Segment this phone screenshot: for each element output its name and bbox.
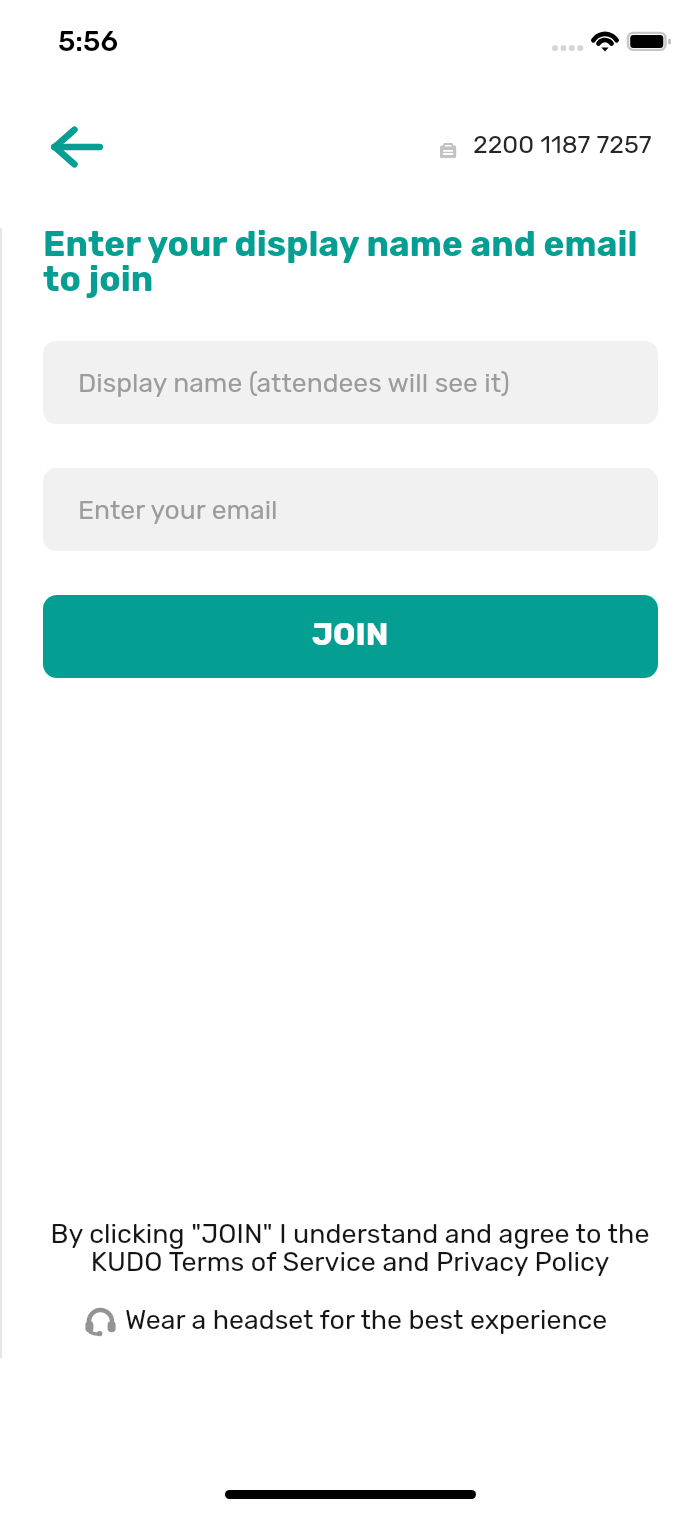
staticText: JOIN [312,616,389,653]
staticText: Enter your email [78,494,278,525]
button[interactable]: Copy meeting ID 2200 1187 7257 [436,126,656,164]
staticText: Display name (attendees will see it) [78,367,510,398]
staticText: By clicking "JOIN" I understand and agre… [26,1218,674,1277]
staticText: Enter your display name and email to joi… [43,223,658,300]
button[interactable]: Display name (attendees will see it) [43,341,658,424]
button[interactable]: Enter your email [43,468,658,551]
staticText: 5:56 [58,25,118,58]
button[interactable]: Back [24,110,130,184]
staticText: 2200 1187 7257 [473,130,652,160]
button[interactable]: JOIN [43,595,658,678]
staticText: Wear a headset for the best experience [125,1304,608,1336]
